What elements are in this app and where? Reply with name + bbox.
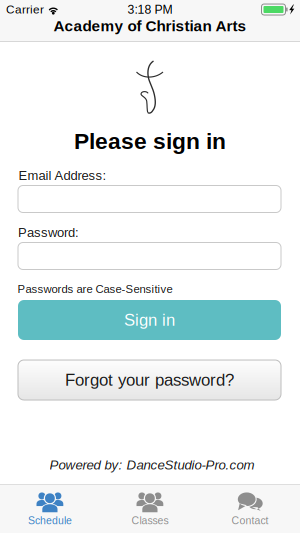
- staticText: Password:: [18, 225, 79, 240]
- button[interactable]: Sign in: [18, 300, 281, 340]
- staticText: Carrier: [6, 3, 44, 16]
- button[interactable]: Forgot your password?: [18, 360, 281, 400]
- staticText: Academy of Christian Arts: [53, 17, 246, 35]
- staticText: Passwords are Case-Sensitive: [17, 283, 172, 295]
- staticText: Contact: [231, 515, 268, 526]
- staticText: Schedule: [28, 515, 72, 526]
- staticText: 3:18 PM: [127, 3, 172, 16]
- staticText: Classes: [131, 515, 168, 526]
- button[interactable]: Classes: [100, 485, 200, 533]
- button[interactable]: Schedule: [0, 485, 100, 533]
- staticText: Please sign in: [74, 128, 226, 154]
- button[interactable]: Contact: [200, 485, 300, 533]
- staticText: Forgot your password?: [65, 371, 234, 389]
- staticText: Powered by: DanceStudio-Pro.com: [49, 458, 254, 472]
- staticText: Sign in: [124, 311, 175, 329]
- staticText: Email Address:: [18, 168, 106, 183]
